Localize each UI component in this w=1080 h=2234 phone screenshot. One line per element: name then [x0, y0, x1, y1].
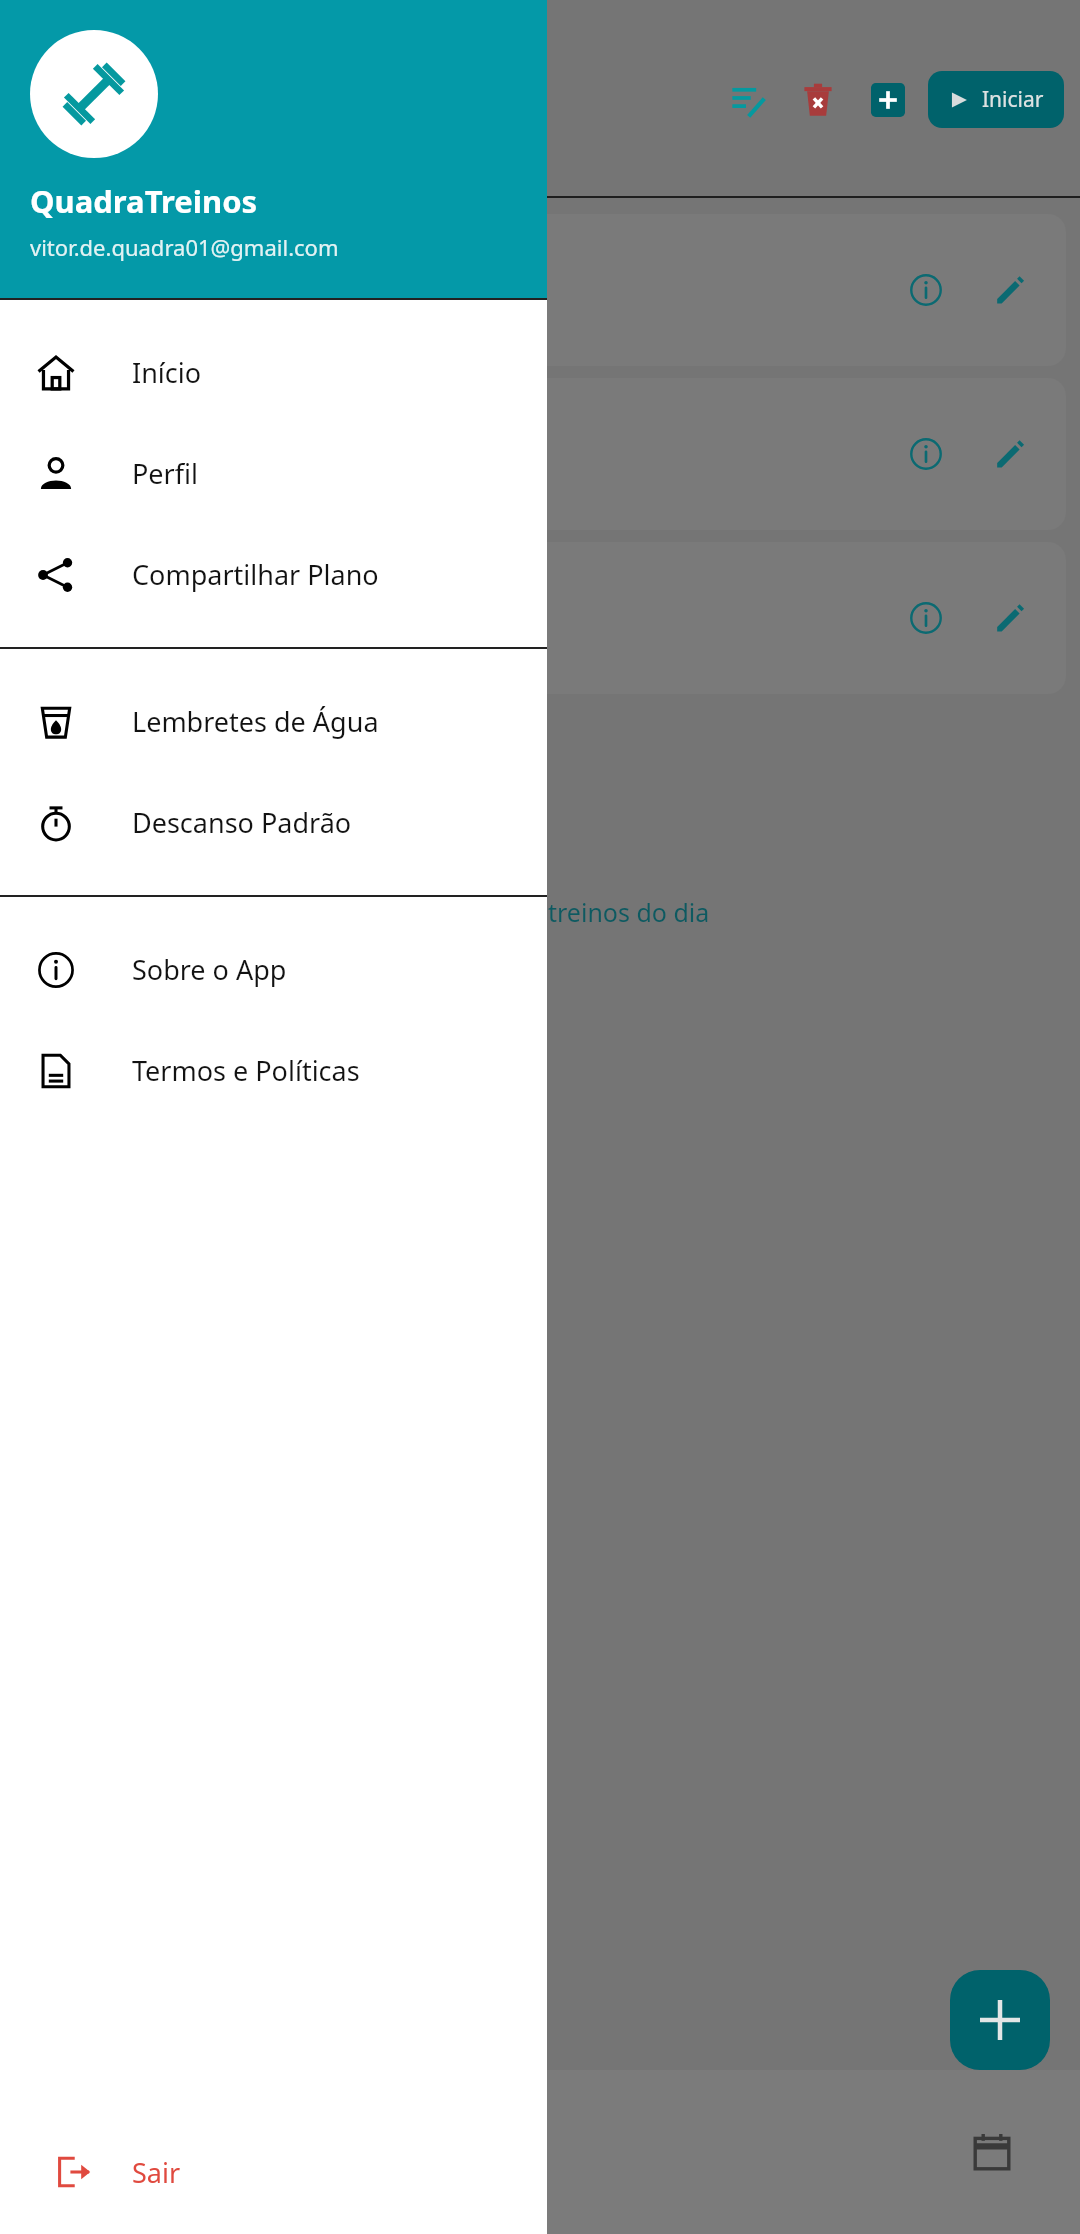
- button[interactable]: Sobre o App: [0, 919, 547, 1020]
- button[interactable]: Adicionar treino: [950, 1970, 1050, 2070]
- button[interactable]: Compartilhar Plano: [0, 524, 547, 625]
- button[interactable]: Dieta: [46, 2110, 130, 2194]
- button[interactable]: Informações: [14, 214, 1066, 366]
- staticText: Início: [132, 354, 202, 391]
- staticText: Sair: [132, 2154, 181, 2191]
- staticText: Descanso Padrão: [132, 804, 352, 841]
- button[interactable]: Calendário: [950, 2110, 1034, 2194]
- staticText: treinos do dia: [548, 895, 710, 929]
- staticText: Compartilhar Plano: [132, 556, 379, 593]
- button[interactable]: Perfil: [0, 423, 547, 524]
- button[interactable]: Informações: [896, 588, 956, 648]
- button[interactable]: Lembretes de Água: [0, 671, 547, 772]
- staticText: Termos e Políticas: [132, 1052, 360, 1089]
- button[interactable]: Informações: [896, 424, 956, 484]
- button[interactable]: Editar lista: [722, 74, 774, 126]
- button[interactable]: Início: [0, 322, 547, 423]
- button[interactable]: Termos e Políticas: [0, 1020, 547, 1121]
- button[interactable]: Informações: [896, 260, 956, 320]
- staticText: Sobre o App: [132, 951, 287, 988]
- button[interactable]: Iniciar: [928, 71, 1064, 128]
- staticText: Lembretes de Água: [132, 703, 379, 740]
- button[interactable]: Informações: [14, 378, 1066, 530]
- staticText: Perfil: [132, 455, 198, 492]
- button[interactable]: Adicionar: [862, 74, 914, 126]
- staticText: QuadraTreinos: [30, 180, 258, 222]
- staticText: vitor.de.quadra01@gmail.com: [30, 232, 339, 262]
- staticText: Iniciar: [982, 85, 1044, 114]
- button[interactable]: Descanso Padrão: [0, 772, 547, 873]
- button[interactable]: Informações: [14, 542, 1066, 694]
- button[interactable]: Editar: [980, 588, 1040, 648]
- button[interactable]: Editar: [980, 424, 1040, 484]
- button[interactable]: Editar: [980, 260, 1040, 320]
- button[interactable]: Excluir: [792, 74, 844, 126]
- button[interactable]: Sair: [0, 2134, 547, 2234]
